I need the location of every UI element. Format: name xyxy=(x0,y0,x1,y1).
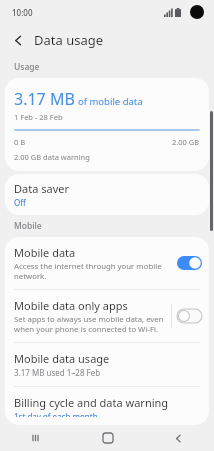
staticText: Usage xyxy=(14,61,40,73)
staticText: Access the internet through your mobile … xyxy=(14,261,165,281)
staticText: of mobile data xyxy=(78,95,143,108)
staticText: 2.00 GB xyxy=(172,137,200,147)
button[interactable]: Recents xyxy=(0,425,72,451)
staticText: Off xyxy=(14,197,26,208)
staticText: 0 B xyxy=(14,137,26,147)
button[interactable]: Mobile data usage xyxy=(5,343,209,386)
staticText: 3.17 MB xyxy=(14,88,75,110)
staticText: Data usage xyxy=(34,31,104,49)
button[interactable]: Back xyxy=(143,425,214,451)
staticText: 2.00 GB data warning xyxy=(14,152,90,162)
staticText: 3.17 MB used 1–28 Feb xyxy=(14,367,101,378)
button[interactable]: Toggle on xyxy=(177,256,202,270)
staticText: Mobile data xyxy=(14,245,76,260)
button[interactable]: Mobile data only apps xyxy=(5,290,209,342)
button[interactable]: Mobile data xyxy=(5,237,209,289)
staticText: Billing cycle and data warning xyxy=(14,395,169,410)
staticText: Mobile data usage xyxy=(14,351,110,366)
button[interactable]: Data saver xyxy=(5,174,209,215)
staticText: 1 Feb - 28 Feb xyxy=(14,112,63,122)
staticText: Mobile data only apps xyxy=(14,298,128,313)
staticText: Mobile xyxy=(14,220,42,232)
button[interactable]: Home xyxy=(72,425,143,451)
staticText: 10:00 xyxy=(12,7,33,18)
button[interactable]: Toggle off xyxy=(177,309,202,323)
button[interactable]: Billing cycle and data warning xyxy=(5,387,209,425)
button[interactable]: Back xyxy=(8,30,28,50)
staticText: 1st day of each month xyxy=(14,411,98,417)
staticText: Set apps to always use mobile data, even… xyxy=(14,314,165,334)
staticText: Data saver xyxy=(14,181,69,196)
